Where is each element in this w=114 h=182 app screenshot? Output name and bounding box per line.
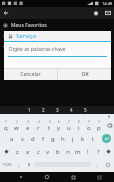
staticText: q: [4, 124, 8, 132]
button[interactable]: .: [92, 158, 102, 171]
button[interactable]: Enter: [98, 132, 114, 145]
button[interactable]: 2: [11, 119, 22, 132]
button[interactable]: f: [38, 132, 48, 145]
staticText: Serviço: [16, 32, 37, 40]
staticText: r: [37, 124, 40, 132]
button[interactable]: 4: [64, 106, 78, 114]
button[interactable]: 1: [22, 106, 36, 114]
button[interactable]: x: [23, 145, 33, 158]
button[interactable]: Shift: [0, 145, 12, 158]
button[interactable]: k: [78, 132, 88, 145]
button[interactable]: 5: [44, 119, 54, 132]
button[interactable]: ,: [14, 158, 24, 171]
button[interactable]: 3: [50, 106, 64, 114]
button[interactable]: 1: [0, 119, 11, 132]
button[interactable]: a: [6, 132, 17, 145]
staticText: Cancelar: [20, 71, 41, 78]
staticText: 2: [16, 120, 18, 124]
button[interactable]: Back: [0, 7, 12, 19]
staticText: f: [42, 135, 45, 143]
button[interactable]: Emoji: [102, 158, 114, 171]
staticText: g: [51, 135, 55, 143]
staticText: 0: [98, 120, 100, 124]
staticText: 3: [56, 107, 59, 113]
button[interactable]: c: [33, 145, 43, 158]
button[interactable]: Menu: [94, 172, 104, 182]
staticText: Digite as palavras-chave: [9, 46, 66, 53]
staticText: p: [97, 124, 101, 132]
staticText: n: [66, 148, 70, 156]
staticText: 1: [5, 120, 7, 124]
button[interactable]: OK: [58, 69, 111, 80]
staticText: x: [26, 148, 30, 156]
button[interactable]: Cancelar: [4, 69, 57, 80]
staticText: j: [72, 135, 74, 143]
staticText: 5: [84, 107, 87, 113]
button[interactable]: ?: [93, 145, 103, 158]
button[interactable]: h: [58, 132, 68, 145]
button[interactable]: j: [68, 132, 78, 145]
staticText: a: [10, 135, 14, 143]
staticText: u: [67, 124, 71, 132]
staticText: y: [57, 124, 61, 132]
staticText: 2: [42, 107, 45, 113]
button[interactable]: s: [17, 132, 28, 145]
staticText: 6: [58, 120, 60, 124]
staticText: !: [87, 148, 89, 156]
button[interactable]: 5: [78, 106, 92, 114]
staticText: v: [46, 148, 50, 156]
button[interactable]: Shift: [103, 145, 114, 158]
staticText: s: [21, 135, 24, 143]
button[interactable]: m: [73, 145, 83, 158]
button[interactable]: 2: [36, 106, 50, 114]
button[interactable]: 4: [33, 119, 44, 132]
staticText: .: [96, 161, 98, 169]
staticText: l: [92, 135, 94, 143]
staticText: z: [16, 148, 19, 156]
staticText: 4: [38, 120, 40, 124]
staticText: 7: [68, 120, 70, 124]
staticText: e: [26, 124, 30, 132]
button[interactable]: Hide keyboard: [16, 172, 26, 182]
button[interactable]: z: [12, 145, 23, 158]
button[interactable]: Meus Favoritos: [0, 20, 114, 30]
button[interactable]: 8: [74, 119, 84, 132]
staticText: 5: [49, 120, 51, 124]
button[interactable]: 7: [64, 119, 74, 132]
button[interactable]: !: [83, 145, 93, 158]
staticText: m: [75, 148, 81, 156]
button[interactable]: 3: [22, 119, 33, 132]
staticText: Relatórios gerenciais: [11, 43, 60, 50]
button[interactable]: Recents: [68, 172, 78, 182]
staticText: h: [61, 135, 65, 143]
button[interactable]: l: [88, 132, 98, 145]
button[interactable]: Relatórios gerenciais: [0, 41, 114, 51]
button[interactable]: ?123: [0, 158, 14, 171]
staticText: 8: [78, 120, 80, 124]
button[interactable]: Home: [42, 172, 52, 182]
staticText: c: [37, 148, 40, 156]
button[interactable]: Home: [90, 7, 102, 19]
button[interactable]: d: [28, 132, 38, 145]
button[interactable]: 9: [84, 119, 94, 132]
staticText: 3: [27, 120, 29, 124]
button[interactable]: b: [53, 145, 63, 158]
staticText: t: [48, 124, 51, 132]
button[interactable]: Consulta de Ordens técnicas: [0, 31, 114, 41]
staticText: b: [56, 148, 60, 156]
button[interactable]: Messages: [102, 7, 114, 19]
button[interactable]: g: [48, 132, 58, 145]
button[interactable]: Voice input: [24, 158, 34, 171]
staticText: k: [81, 135, 85, 143]
button[interactable]: v: [43, 145, 53, 158]
button[interactable]: 6: [54, 119, 64, 132]
button[interactable]: n: [63, 145, 73, 158]
button[interactable]: Backspace: [104, 119, 114, 132]
staticText: 4: [70, 107, 73, 113]
staticText: ?: [97, 148, 100, 156]
staticText: Consulta de Ordens técnicas: [11, 33, 78, 40]
staticText: ?123: [3, 162, 12, 167]
button[interactable]: 0: [94, 119, 104, 132]
staticText: i: [78, 124, 80, 132]
